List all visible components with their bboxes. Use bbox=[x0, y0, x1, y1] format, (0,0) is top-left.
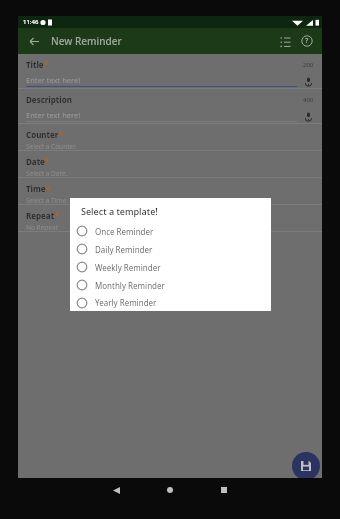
button[interactable]: Back bbox=[24, 31, 44, 51]
staticText: Enter text here! bbox=[26, 110, 81, 120]
staticText: ? bbox=[305, 36, 309, 46]
staticText: * bbox=[46, 183, 51, 194]
button[interactable]: Once Reminder bbox=[70, 222, 271, 240]
staticText: Select a Time. bbox=[26, 196, 68, 204]
staticText: * bbox=[45, 156, 50, 167]
button[interactable]: Help bbox=[296, 30, 318, 52]
button[interactable]: Recents bbox=[204, 478, 244, 502]
button[interactable]: Time bbox=[18, 178, 322, 204]
staticText: Yearly Reminder bbox=[95, 297, 157, 308]
staticText: Title bbox=[26, 59, 44, 70]
staticText: * bbox=[59, 129, 64, 140]
button[interactable]: Yearly Reminder bbox=[70, 294, 271, 311]
staticText: Time bbox=[26, 183, 46, 194]
staticText: 11:46 bbox=[23, 18, 39, 26]
button[interactable]: Voice input bbox=[302, 75, 314, 87]
staticText: No Repeat bbox=[26, 223, 58, 231]
staticText: Enter text here! bbox=[26, 75, 81, 85]
button[interactable]: Monthly Reminder bbox=[70, 276, 271, 294]
button[interactable]: Repeat bbox=[18, 205, 322, 231]
button[interactable]: Counter bbox=[18, 124, 322, 150]
button[interactable]: Description bbox=[18, 89, 322, 123]
staticText: Select a Counter. bbox=[26, 142, 77, 150]
button[interactable]: Date bbox=[18, 151, 322, 177]
staticText: * bbox=[55, 210, 60, 221]
staticText: 400 bbox=[303, 96, 314, 104]
button[interactable]: Back bbox=[96, 478, 136, 502]
staticText: Description bbox=[26, 94, 72, 105]
staticText: 200 bbox=[303, 61, 314, 69]
staticText: Once Reminder bbox=[95, 226, 154, 237]
button[interactable]: Title bbox=[18, 54, 322, 88]
staticText: Daily Reminder bbox=[95, 244, 153, 255]
button[interactable]: List bbox=[274, 30, 296, 52]
button[interactable]: Home bbox=[150, 478, 190, 502]
staticText: Select a template! bbox=[81, 205, 158, 217]
staticText: Monthly Reminder bbox=[95, 280, 165, 291]
staticText: Repeat bbox=[26, 210, 55, 221]
staticText: * bbox=[44, 59, 49, 70]
staticText: Select a Date. bbox=[26, 169, 68, 177]
button[interactable]: Save bbox=[292, 452, 320, 480]
staticText: Weekly Reminder bbox=[95, 262, 161, 273]
button[interactable]: Weekly Reminder bbox=[70, 258, 271, 276]
staticText: Counter bbox=[26, 129, 59, 140]
button[interactable]: Daily Reminder bbox=[70, 240, 271, 258]
button[interactable]: Voice input bbox=[302, 110, 314, 122]
staticText: Date bbox=[26, 156, 45, 167]
staticText: New Reminder bbox=[51, 34, 122, 48]
